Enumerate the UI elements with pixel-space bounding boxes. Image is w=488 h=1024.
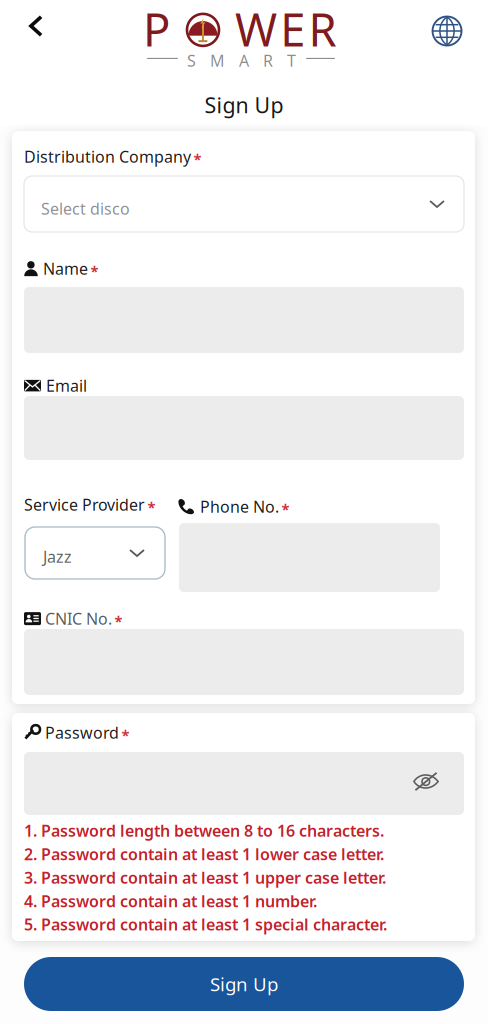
staticText: * bbox=[90, 261, 98, 281]
staticText: M bbox=[210, 50, 225, 71]
staticText: 4. Password contain at least 1 number. bbox=[24, 890, 317, 911]
staticText: Password bbox=[45, 722, 119, 743]
button[interactable]: Show password bbox=[413, 772, 439, 791]
staticText: Distribution Company bbox=[24, 146, 191, 167]
staticText: Service Provider bbox=[24, 494, 145, 515]
staticText: R bbox=[308, 0, 336, 59]
staticText: Sign Up bbox=[210, 972, 278, 996]
staticText: 1. Password length between 8 to 16 chara… bbox=[24, 820, 384, 841]
staticText: A bbox=[239, 50, 249, 71]
staticText: 5. Password contain at least 1 special c… bbox=[24, 914, 387, 935]
staticText: R bbox=[263, 50, 273, 71]
staticText: W bbox=[235, 0, 277, 59]
button[interactable]: Language bbox=[432, 16, 462, 46]
staticText: CNIC No. bbox=[45, 608, 112, 629]
staticText: 2. Password contain at least 1 lower cas… bbox=[24, 843, 384, 865]
staticText: * bbox=[281, 499, 289, 519]
button[interactable]: Jazz bbox=[25, 527, 165, 579]
staticText: E bbox=[280, 0, 305, 59]
staticText: Sign Up bbox=[204, 91, 283, 119]
staticText: * bbox=[121, 725, 129, 745]
staticText: 3. Password contain at least 1 upper cas… bbox=[24, 867, 386, 888]
staticText: P bbox=[143, 0, 170, 59]
staticText: * bbox=[114, 611, 122, 631]
staticText: Phone No. bbox=[200, 496, 279, 517]
staticText: * bbox=[147, 497, 155, 517]
button[interactable]: Back bbox=[13, 3, 59, 49]
staticText: S bbox=[187, 50, 196, 71]
button[interactable]: Sign Up bbox=[24, 957, 464, 1011]
staticText: Name bbox=[43, 258, 88, 279]
button[interactable]: Select disco bbox=[24, 176, 464, 232]
staticText: T bbox=[287, 50, 296, 71]
staticText: Jazz bbox=[43, 546, 72, 567]
staticText: Email bbox=[46, 375, 87, 396]
staticText: Select disco bbox=[41, 198, 130, 219]
staticText: * bbox=[193, 149, 201, 169]
